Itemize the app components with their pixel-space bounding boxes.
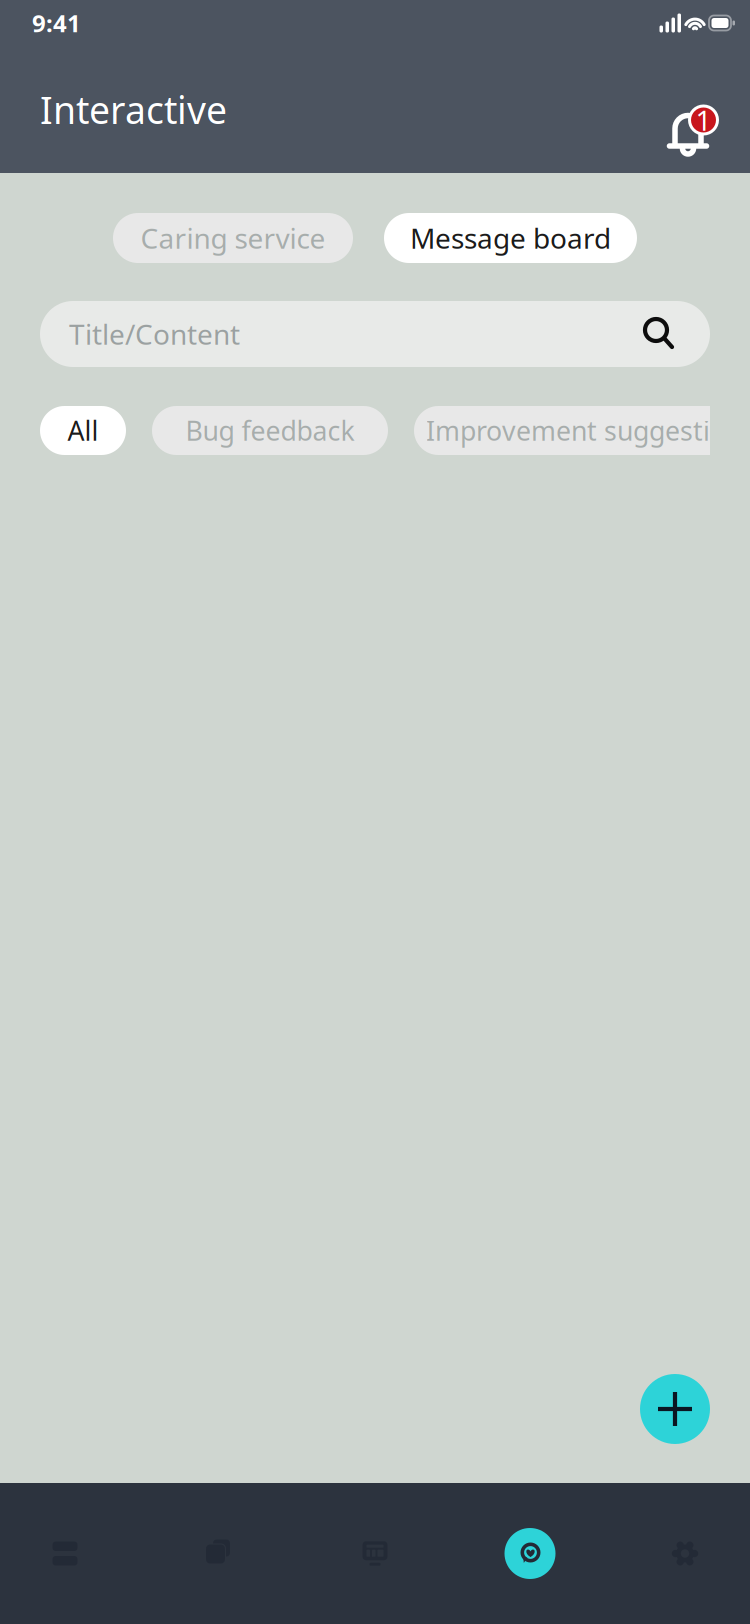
staticText: All <box>67 413 98 448</box>
staticText: Message board <box>410 219 611 257</box>
staticText: Title/Content <box>69 315 240 353</box>
button[interactable]: Bug feedback <box>152 406 388 455</box>
button[interactable]: All <box>40 406 126 455</box>
staticText: Caring service <box>140 219 325 257</box>
button[interactable]: Caring service <box>113 213 353 263</box>
button[interactable]: Search <box>641 316 677 352</box>
staticText: Interactive <box>40 85 227 134</box>
button[interactable]: Add post <box>640 1374 710 1444</box>
button[interactable]: Notifications <box>663 64 719 154</box>
staticText: Bug feedback <box>185 413 354 448</box>
button[interactable]: Interactive <box>484 1507 576 1599</box>
staticText: 9:41 <box>32 7 81 39</box>
button[interactable]: Message board <box>384 213 637 263</box>
staticText: 1 <box>695 101 711 139</box>
staticText: Improvement suggestion <box>426 413 742 448</box>
button[interactable]: Improvement suggestion <box>414 406 750 455</box>
